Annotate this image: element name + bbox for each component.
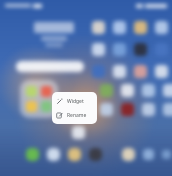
staticText: Widget xyxy=(67,98,84,105)
button[interactable]: Widget xyxy=(52,94,97,108)
button[interactable]: Search xyxy=(16,61,84,72)
button[interactable] xyxy=(25,85,53,113)
staticText: Rename xyxy=(67,112,87,119)
button[interactable]: Rename xyxy=(52,108,97,122)
